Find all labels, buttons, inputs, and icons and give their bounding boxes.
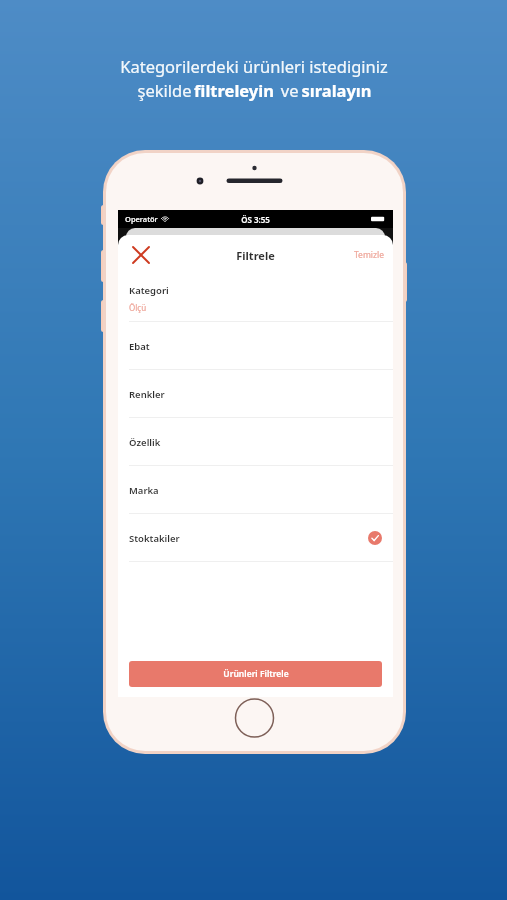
button[interactable]: Stoktakiler (118, 514, 393, 562)
button[interactable]: Marka (118, 466, 393, 514)
staticText: Kategorilerdeki ürünleri istediginiz (120, 55, 388, 77)
button[interactable]: Kategori (118, 275, 393, 322)
staticText: Ürünleri Filtrele (223, 668, 289, 680)
staticText: Özellik (129, 436, 161, 449)
staticText: Temizle (353, 249, 384, 261)
button[interactable]: Temizle (344, 242, 393, 268)
staticText: Ölçü (129, 302, 147, 313)
staticText: şekilde (135, 79, 194, 101)
staticText: Filtrele (236, 248, 275, 263)
button[interactable]: Renkler (118, 370, 393, 418)
button[interactable]: Özellik (118, 418, 393, 466)
staticText: Operatör (125, 214, 158, 224)
button[interactable]: Ebat (118, 322, 393, 370)
button[interactable]: Kapat (127, 241, 155, 269)
staticText: Marka (129, 484, 159, 497)
staticText: Renkler (129, 388, 165, 401)
staticText: filtreleyin (194, 79, 274, 101)
staticText: ÖS 3:55 (241, 214, 270, 225)
staticText: Stoktakiler (129, 532, 180, 545)
staticText: Ebat (129, 340, 150, 353)
staticText: Kategori (129, 284, 169, 297)
button[interactable]: Ürünleri Filtrele (129, 661, 382, 687)
staticText: ve (274, 79, 301, 101)
staticText: sıralayın (301, 79, 372, 101)
